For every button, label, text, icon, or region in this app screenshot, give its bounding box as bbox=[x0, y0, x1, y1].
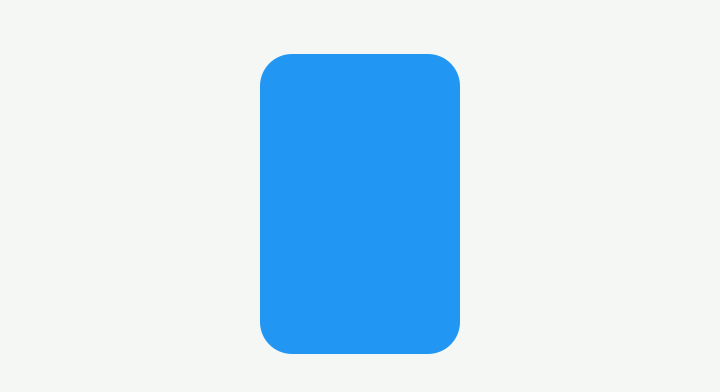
button[interactable]: Card bbox=[260, 54, 460, 354]
